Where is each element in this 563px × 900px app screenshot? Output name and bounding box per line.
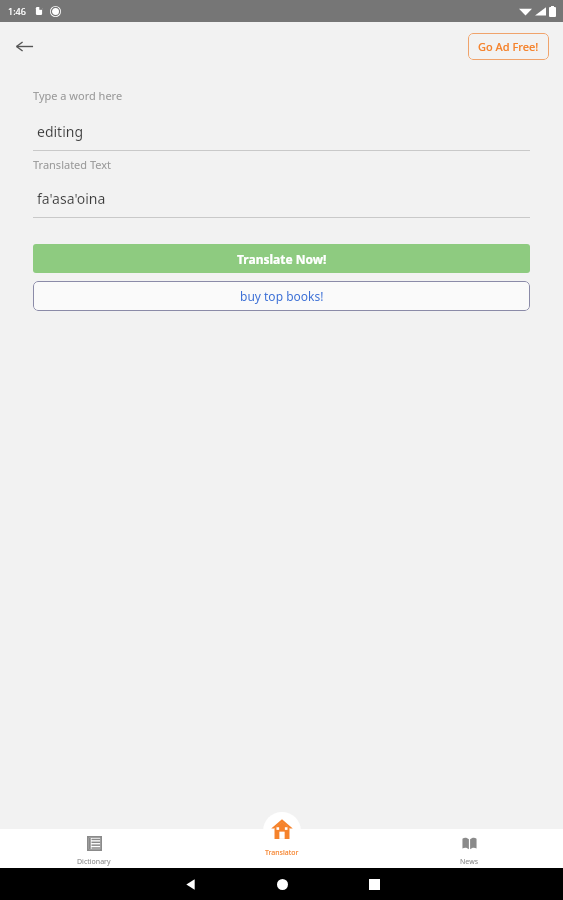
button[interactable]: buy top books! [33,281,530,311]
staticText: Translator [265,848,299,858]
staticText: 1:46 [8,5,26,17]
staticText: Translate Now! [237,251,327,267]
button[interactable]: Home [236,868,328,900]
button[interactable]: Dictionary [0,829,187,868]
staticText: Translated Text [33,157,112,172]
staticText: News [460,857,478,867]
button[interactable]: News [375,829,563,868]
staticText: Dictionary [77,857,111,867]
button[interactable]: editing [33,117,530,145]
staticText: fa'asa'oina [37,189,106,208]
button[interactable]: Back [144,868,236,900]
button[interactable]: Back [4,26,44,66]
staticText: buy top books! [240,288,324,304]
staticText: Go Ad Free! [478,39,539,54]
button[interactable]: fa'asa'oina [33,184,530,212]
staticText: editing [37,122,84,141]
staticText: Type a word here [33,88,123,103]
button[interactable]: Translator [236,808,328,868]
button[interactable]: Recents [328,868,420,900]
other: Translator [269,816,295,842]
button[interactable]: Go Ad Free! [468,33,549,60]
button[interactable]: Translate Now! [33,244,530,273]
